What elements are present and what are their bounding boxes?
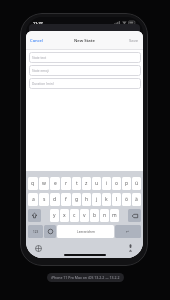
staticText: v bbox=[83, 212, 86, 219]
staticText: ↵ bbox=[126, 230, 130, 234]
button[interactable]: y bbox=[50, 209, 59, 222]
staticText: y bbox=[53, 212, 56, 219]
button[interactable]: x bbox=[60, 209, 69, 222]
button[interactable]: 123 bbox=[28, 225, 43, 238]
button[interactable]: e bbox=[50, 177, 60, 190]
button[interactable]: z bbox=[82, 177, 91, 190]
button[interactable]: l bbox=[112, 193, 121, 206]
staticText: State text bbox=[32, 56, 47, 60]
button[interactable]: r bbox=[61, 177, 71, 190]
button[interactable]: iPhone 11 Pro Max on iOS 13.2.2 — 13.2.2 bbox=[47, 273, 124, 282]
staticText: k bbox=[105, 196, 108, 203]
staticText: m bbox=[112, 212, 117, 219]
button[interactable]: j bbox=[92, 193, 101, 206]
staticText: z bbox=[85, 180, 88, 187]
staticText: u bbox=[95, 180, 99, 187]
staticText: g bbox=[75, 196, 79, 203]
button[interactable]: g bbox=[72, 193, 81, 206]
button[interactable]: o bbox=[112, 177, 121, 190]
staticText: o bbox=[115, 180, 119, 187]
staticText: h bbox=[85, 196, 89, 203]
staticText: w bbox=[42, 180, 46, 187]
staticText: ö bbox=[125, 196, 129, 203]
staticText: New State bbox=[74, 38, 95, 44]
button[interactable]: Leerzeichen bbox=[57, 225, 114, 238]
staticText: s bbox=[43, 196, 46, 203]
button[interactable]: b bbox=[90, 209, 99, 222]
button[interactable]: u bbox=[92, 177, 101, 190]
button[interactable]: f bbox=[61, 193, 71, 206]
staticText: l bbox=[116, 196, 118, 203]
button[interactable] bbox=[128, 209, 141, 222]
staticText: 123 bbox=[33, 230, 39, 234]
button[interactable]: v bbox=[80, 209, 89, 222]
button[interactable]: n bbox=[100, 209, 109, 222]
button[interactable]: i bbox=[102, 177, 111, 190]
button[interactable] bbox=[44, 225, 56, 238]
staticText: 11:37 bbox=[33, 21, 43, 26]
button[interactable]: q bbox=[28, 177, 38, 190]
button[interactable]: c bbox=[70, 209, 79, 222]
staticText: a bbox=[32, 196, 35, 203]
staticText: d bbox=[53, 196, 57, 203]
button[interactable]: s bbox=[39, 193, 49, 206]
button[interactable]: h bbox=[82, 193, 91, 206]
staticText: ü bbox=[135, 180, 139, 187]
staticText: f bbox=[65, 196, 67, 203]
staticText: x bbox=[63, 212, 66, 219]
button[interactable]: Save bbox=[129, 38, 139, 44]
staticText: b bbox=[93, 212, 97, 219]
staticText: c bbox=[73, 212, 76, 219]
button[interactable]: m bbox=[110, 209, 119, 222]
staticText: Leerzeichen bbox=[77, 230, 95, 234]
button[interactable]: d bbox=[50, 193, 60, 206]
button[interactable]: ↵ bbox=[115, 225, 141, 238]
staticText: n bbox=[103, 212, 107, 219]
staticText: r bbox=[65, 180, 68, 187]
button[interactable]: Duration (min) bbox=[29, 78, 141, 89]
button[interactable]: t bbox=[72, 177, 81, 190]
button[interactable]: State emoji bbox=[29, 65, 141, 76]
staticText: i bbox=[106, 180, 108, 187]
button[interactable]: State text bbox=[29, 52, 141, 63]
button[interactable]: a bbox=[28, 193, 38, 206]
button[interactable]: ä bbox=[132, 193, 141, 206]
button[interactable]: Cancel bbox=[30, 38, 44, 44]
staticText: iPhone 11 Pro Max on iOS 13.2.2 — 13.2.2 bbox=[51, 275, 120, 280]
staticText: Cancel bbox=[30, 38, 44, 44]
button[interactable]: ö bbox=[122, 193, 131, 206]
staticText: State emoji bbox=[32, 69, 49, 73]
staticText: j bbox=[96, 196, 98, 203]
button[interactable]: p bbox=[122, 177, 131, 190]
staticText: e bbox=[54, 180, 57, 187]
staticText: ä bbox=[135, 196, 138, 203]
staticText: t bbox=[76, 180, 78, 187]
button[interactable]: ü bbox=[132, 177, 141, 190]
button[interactable]: k bbox=[102, 193, 111, 206]
button[interactable]: w bbox=[39, 177, 49, 190]
button[interactable] bbox=[28, 209, 41, 222]
staticText: Duration (min) bbox=[32, 82, 54, 86]
staticText: p bbox=[125, 180, 129, 187]
staticText: q bbox=[31, 180, 35, 187]
staticText: Save bbox=[129, 38, 139, 44]
